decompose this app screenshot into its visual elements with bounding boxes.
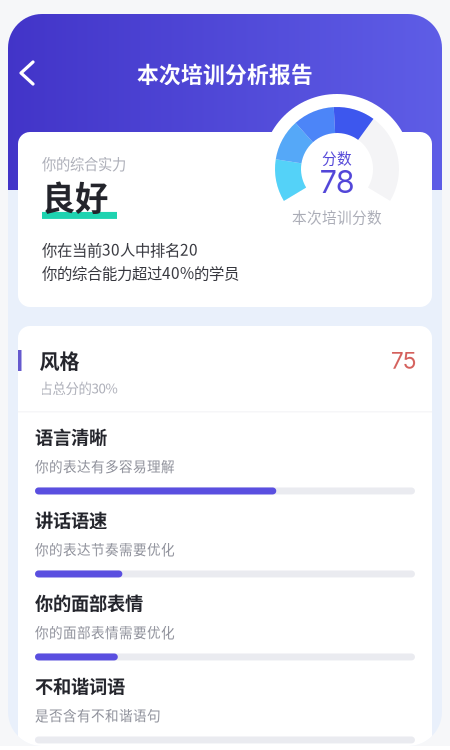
staticText: 本次培训分析报告 bbox=[137, 57, 313, 89]
staticText: 你的表达有多容易理解 bbox=[35, 456, 175, 475]
staticText: 语言清晰 bbox=[35, 423, 107, 450]
button[interactable]: Back bbox=[8, 52, 50, 94]
staticText: 占总分的30% bbox=[39, 378, 117, 397]
staticText: 不和谐词语 bbox=[35, 672, 125, 699]
staticText: 是否含有不和谐语句 bbox=[35, 705, 161, 724]
staticText: 你的综合实力 bbox=[42, 153, 126, 174]
staticText: 你的面部表情 bbox=[35, 589, 143, 616]
staticText: 良好 bbox=[42, 172, 108, 220]
staticText: 你的综合能力超过40%的学员 bbox=[42, 261, 239, 283]
staticText: 你的面部表情需要优化 bbox=[35, 622, 175, 641]
staticText: 你在当前30人中排名20 bbox=[42, 238, 198, 260]
staticText: 风格 bbox=[39, 346, 79, 375]
staticText: 78 bbox=[320, 163, 354, 200]
staticText: 分数 bbox=[322, 147, 352, 168]
staticText: 你的表达节奏需要优化 bbox=[35, 539, 175, 558]
staticText: 75 bbox=[391, 347, 416, 374]
staticText: 讲话语速 bbox=[35, 506, 107, 533]
staticText: 本次培训分数 bbox=[292, 206, 382, 227]
